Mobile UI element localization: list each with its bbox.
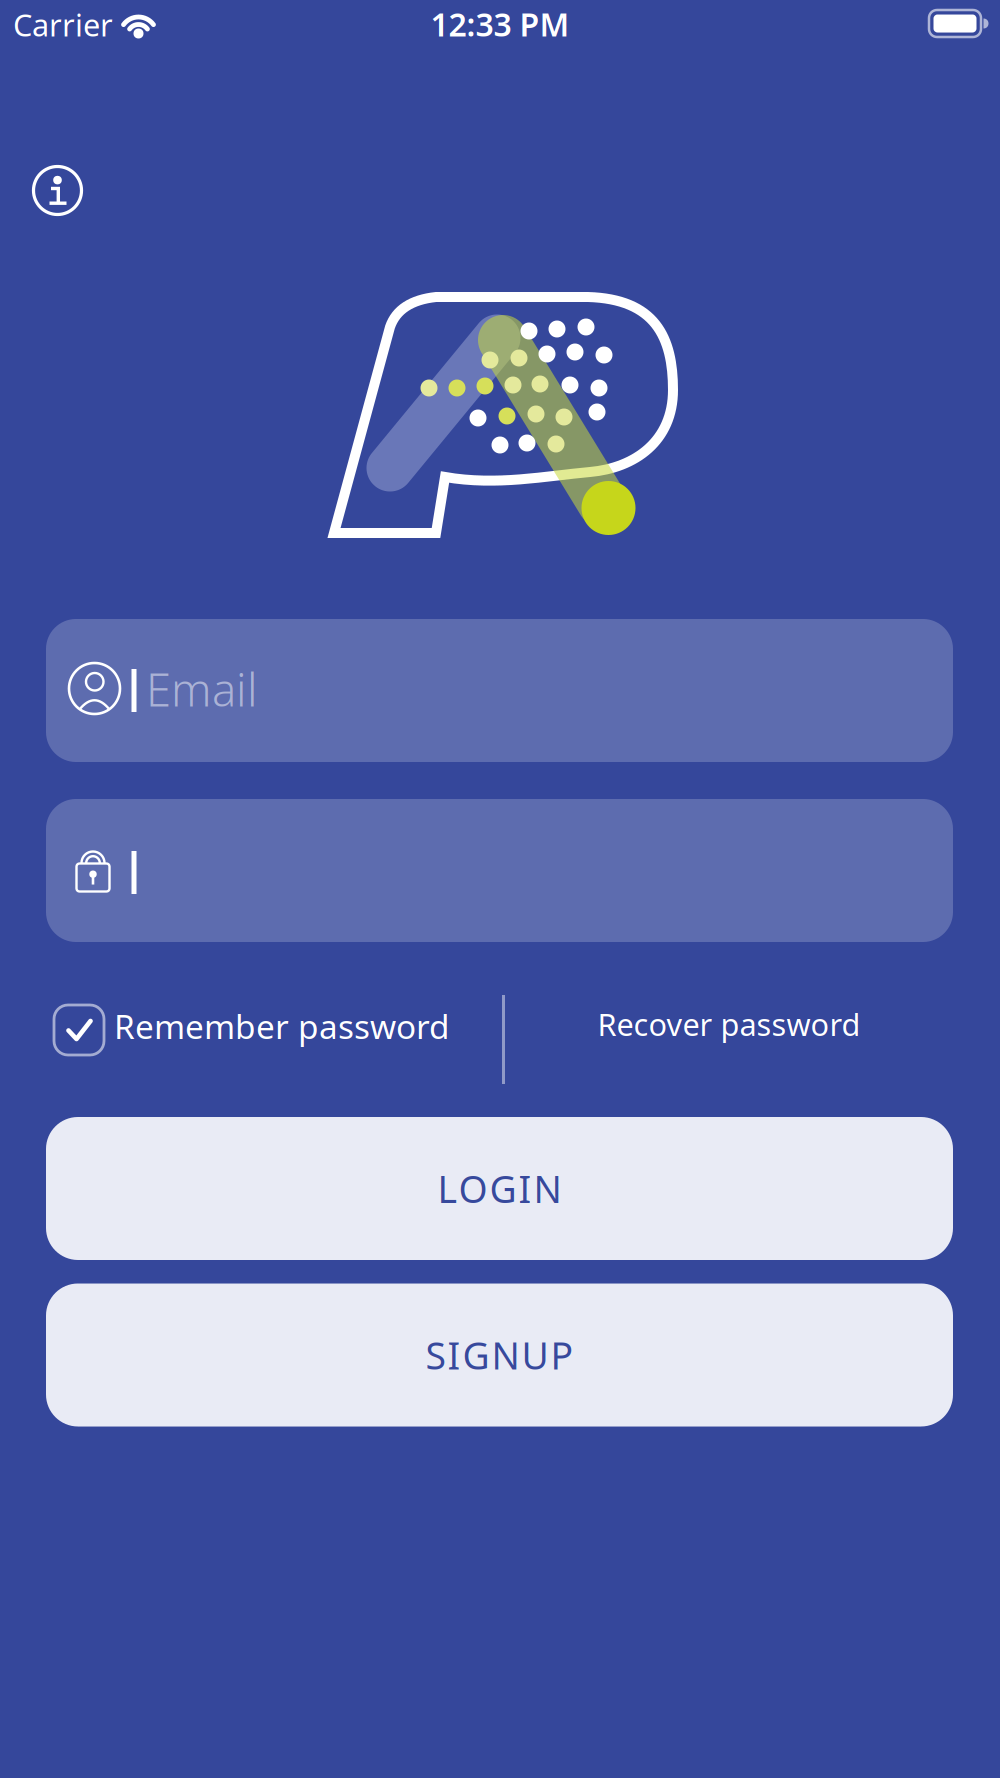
staticText: LOGIN [437,1164,561,1213]
staticText: Carrier [13,4,113,45]
staticText: Remember password [114,1004,450,1048]
staticText: SIGNUP [425,1330,573,1380]
button[interactable]: Info [19,152,95,228]
button[interactable]: Password [46,799,953,942]
button[interactable]: Remember password [49,980,459,1080]
staticText: Recover password [597,1004,860,1044]
button[interactable]: SIGNUP [46,1283,953,1426]
staticText: Email [146,659,258,719]
button[interactable]: Email [46,619,953,762]
button[interactable]: LOGIN [46,1117,953,1260]
staticText: 12:33 PM [430,3,569,45]
button[interactable]: Recover password [539,974,919,1074]
